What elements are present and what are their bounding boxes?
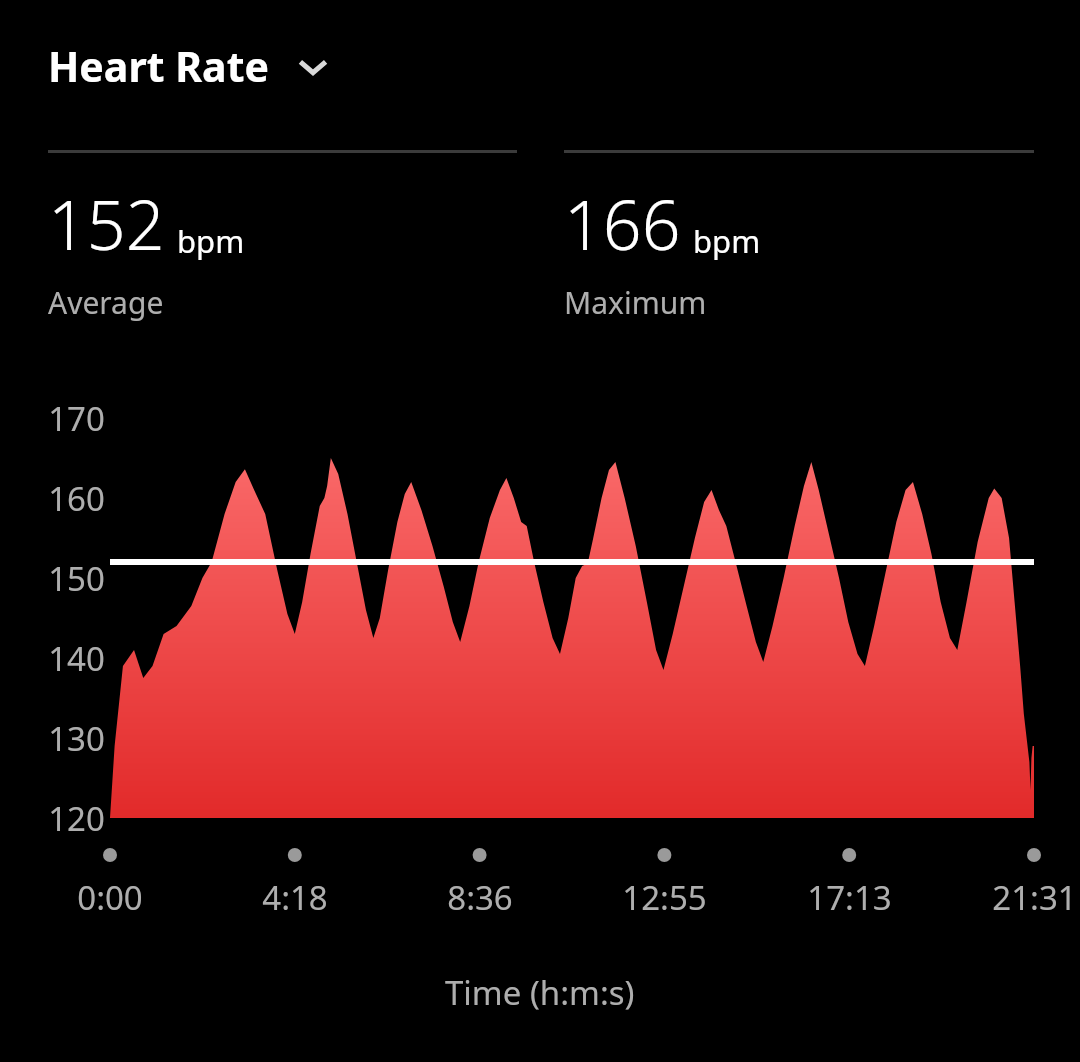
- other: Change metric: [289, 42, 337, 90]
- staticText: Heart Rate: [48, 38, 269, 94]
- staticText: Maximum: [564, 282, 707, 323]
- staticText: 140: [48, 636, 105, 681]
- staticText: Time (h:m:s): [445, 970, 635, 1015]
- staticText: bpm: [177, 220, 245, 262]
- staticText: 0:00: [77, 875, 143, 920]
- staticText: 8:36: [447, 875, 513, 920]
- staticText: 166: [564, 177, 681, 270]
- staticText: 17:13: [807, 875, 892, 920]
- staticText: bpm: [693, 220, 761, 262]
- staticText: 12:55: [622, 875, 707, 920]
- staticText: 4:18: [262, 875, 328, 920]
- staticText: 170: [48, 396, 105, 441]
- staticText: 152: [48, 177, 165, 270]
- staticText: 160: [48, 476, 105, 521]
- button[interactable]: 152: [48, 150, 517, 323]
- staticText: 150: [48, 556, 105, 601]
- staticText: 130: [48, 716, 105, 761]
- staticText: 21:31: [992, 875, 1077, 920]
- staticText: Average: [48, 282, 164, 323]
- staticText: 120: [48, 796, 105, 841]
- button[interactable]: Heart Rate: [44, 34, 347, 98]
- button[interactable]: 166: [564, 150, 1034, 323]
